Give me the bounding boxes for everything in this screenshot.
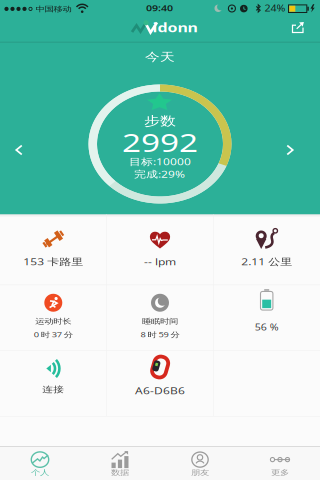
button[interactable]: 2.11 公里 <box>214 214 320 284</box>
staticText: 8 时 59 分 <box>140 328 179 341</box>
button[interactable]: 运动时长 <box>0 282 106 352</box>
staticText: 2.11 公里 <box>241 253 292 269</box>
button[interactable]: 数据 <box>80 447 160 480</box>
staticText: 个人 <box>31 467 49 478</box>
staticText: 56 % <box>255 320 279 334</box>
staticText: -- lpm <box>144 253 176 269</box>
staticText: 09:40 <box>146 1 173 15</box>
button[interactable]: 个人 <box>0 447 80 480</box>
button[interactable]: 56 % <box>214 282 320 352</box>
button[interactable]: Share <box>291 22 304 33</box>
staticText: 朋友 <box>191 467 209 478</box>
staticText: 153 卡路里 <box>23 253 83 269</box>
button[interactable]: -- lpm <box>107 214 213 284</box>
button[interactable]: 连接 <box>0 348 106 418</box>
staticText: 连接 <box>42 383 64 396</box>
staticText: 目标:10000 <box>129 153 191 169</box>
staticText: 24% <box>264 1 285 15</box>
staticText: 0 时 37 分 <box>34 328 73 341</box>
staticText: 更多 <box>271 467 289 478</box>
staticText: 今天 <box>145 48 175 66</box>
button[interactable]: Next day <box>281 141 299 159</box>
button[interactable]: Previous day <box>10 141 28 159</box>
staticText: 完成:29% <box>134 166 185 182</box>
staticText: 睡眠时间 <box>142 315 178 327</box>
staticText: 数据 <box>111 467 129 478</box>
staticText: idonn <box>152 17 197 38</box>
button[interactable]: 153 卡路里 <box>0 214 106 284</box>
button[interactable]: A6-D6B6 <box>107 348 213 418</box>
button[interactable]: 朋友 <box>160 447 240 480</box>
staticText: 步数 <box>144 111 176 131</box>
staticText: 中国移动 <box>35 3 71 15</box>
button[interactable]: 更多 <box>240 447 320 480</box>
button[interactable]: 睡眠时间 <box>107 282 213 352</box>
staticText: A6-D6B6 <box>135 382 185 398</box>
staticText: 2992 <box>122 120 198 164</box>
staticText: 运动时长 <box>35 315 71 327</box>
